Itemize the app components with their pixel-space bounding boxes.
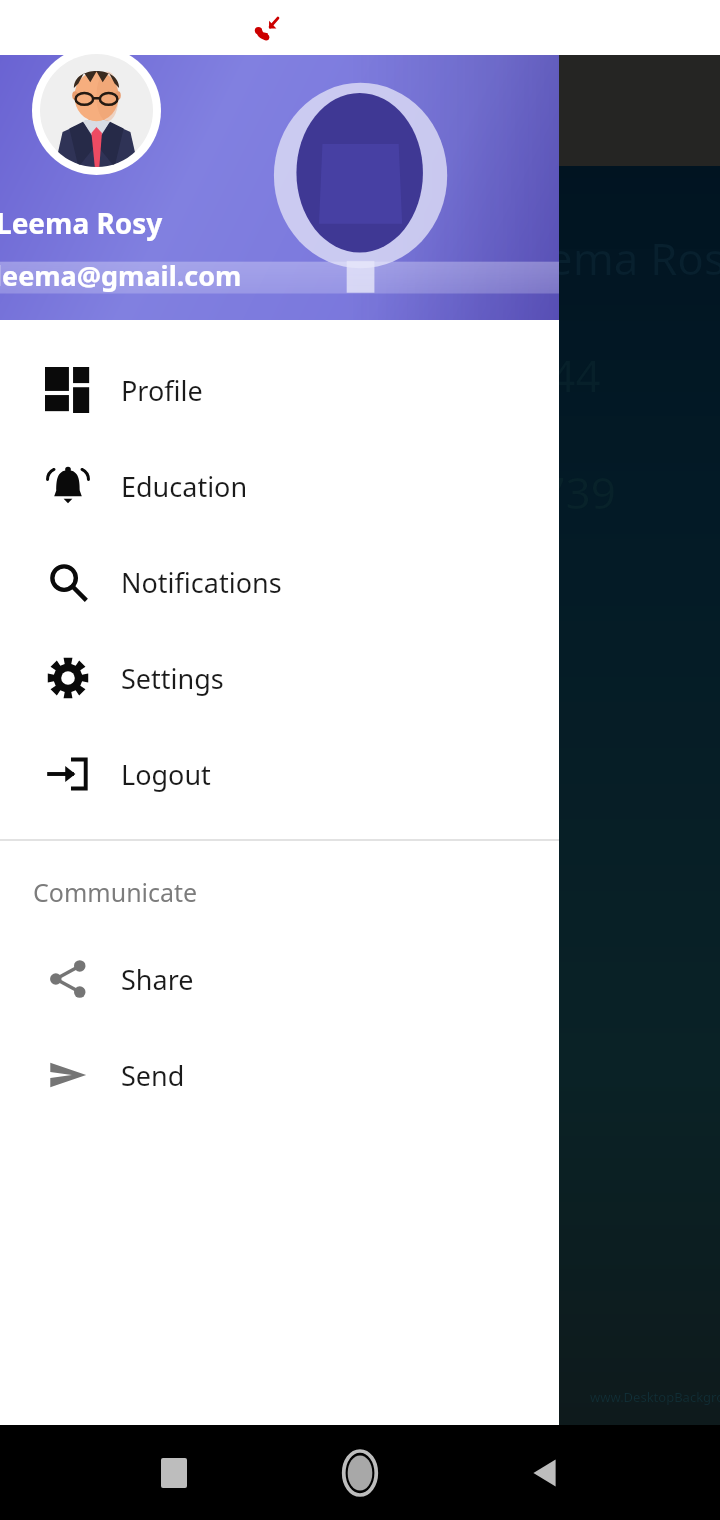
staticText: 98739	[490, 462, 616, 522]
staticText: 9944	[500, 345, 601, 405]
button[interactable]: Send	[0, 1027, 559, 1123]
staticText: Education	[121, 468, 248, 505]
staticText: www.DesktopBackground.org	[590, 1388, 720, 1406]
staticText: Profile	[121, 372, 203, 409]
other: Missed call	[254, 15, 280, 41]
staticText: Leema Rosy	[500, 228, 720, 288]
button[interactable]: Notifications	[0, 534, 559, 630]
button[interactable]: Profile photo	[32, 46, 161, 175]
staticText: Leema Rosy	[0, 204, 163, 242]
staticText: Logout	[121, 756, 211, 793]
staticText: Send	[121, 1057, 185, 1094]
button[interactable]: Home	[333, 1446, 387, 1500]
button[interactable]: Profile	[0, 342, 559, 438]
staticText: leema@gmail.com	[0, 257, 242, 294]
button[interactable]: Logout	[0, 726, 559, 822]
staticText: Communicate	[33, 875, 198, 909]
button[interactable]: Share	[0, 931, 559, 1027]
button[interactable]: Back	[522, 1449, 570, 1497]
button[interactable]: Settings	[0, 630, 559, 726]
staticText: Settings	[121, 660, 224, 697]
button[interactable]: Education	[0, 438, 559, 534]
staticText: Share	[121, 961, 194, 998]
button[interactable]: Recent apps	[150, 1449, 198, 1497]
staticText: Notifications	[121, 564, 282, 601]
